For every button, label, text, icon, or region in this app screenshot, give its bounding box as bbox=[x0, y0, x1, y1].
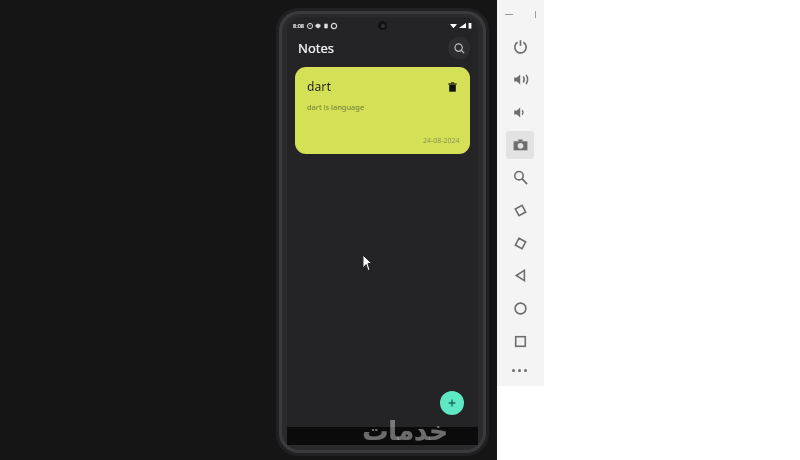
button[interactable]: Delete note bbox=[444, 79, 460, 95]
button[interactable]: Emulator control bbox=[508, 263, 532, 287]
button[interactable]: Search bbox=[448, 37, 470, 59]
button[interactable]: Emulator control bbox=[508, 67, 532, 91]
button[interactable]: Add note bbox=[440, 391, 464, 415]
button[interactable]: More bbox=[512, 365, 530, 375]
staticText: 8:08 bbox=[293, 22, 304, 29]
staticText: خدمات bbox=[362, 416, 448, 446]
button[interactable]: dart bbox=[295, 67, 470, 154]
button[interactable]: Emulator control bbox=[508, 100, 532, 124]
staticText: 24-08-2024 bbox=[423, 136, 460, 146]
button[interactable]: Emulator control bbox=[508, 34, 532, 58]
button[interactable]: Emulator control bbox=[508, 165, 532, 189]
button[interactable]: Emulator control bbox=[508, 296, 532, 320]
button[interactable]: Emulator control bbox=[508, 133, 532, 157]
staticText: dart is language bbox=[307, 102, 365, 112]
button[interactable]: Emulator control bbox=[508, 231, 532, 255]
staticText: Notes bbox=[298, 39, 334, 57]
button[interactable]: Emulator control bbox=[508, 198, 532, 222]
staticText: dart bbox=[307, 78, 331, 94]
button[interactable]: Emulator control bbox=[508, 329, 532, 353]
